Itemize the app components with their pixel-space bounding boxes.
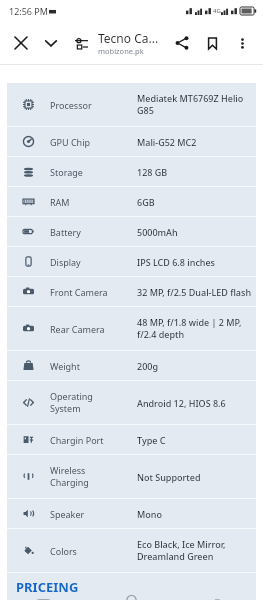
staticText: Mono [137,508,253,520]
staticText: IPS LCD 6.8 inches [137,256,253,268]
staticText: Operating System [50,390,137,415]
staticText: Mali-G52 MC2 [137,136,253,148]
staticText: Weight [50,360,137,372]
staticText: GPU Chip [50,136,137,148]
button[interactable]: Processor [7,83,256,126]
button[interactable]: Wireless Charging [7,455,256,498]
staticText: Android 12, HIOS 8.6 [137,397,253,409]
staticText: 6GB [137,196,253,208]
button[interactable]: Close [6,28,36,58]
staticText: Rear Camera [50,323,137,335]
button[interactable]: Battery [7,217,256,246]
button[interactable]: More options [227,28,257,58]
button[interactable]: Operating System [7,381,256,424]
staticText: Display [50,256,137,268]
staticText: Type C [137,434,253,446]
button[interactable]: Tecno Ca... [96,30,167,56]
staticText: 32 MP, f/2.5 Dual-LED flash [137,286,253,298]
staticText: 48 MP, f/1.8 wide | 2 MP, f/2.4 depth [137,316,253,341]
button[interactable]: Collapse [36,28,66,58]
staticText: PRICEING [16,578,79,596]
staticText: 5000mAh [137,226,253,238]
staticText: Battery [50,226,137,238]
staticText: 12:56 PM [9,5,48,17]
staticText: Eco Black, Ice Mirror, Dreamland Green [137,538,253,563]
button[interactable]: RAM [7,187,256,216]
staticText: Not Supported [137,471,253,483]
staticText: Storage [50,166,137,178]
staticText: Chargin Port [50,434,137,446]
button[interactable]: Bookmark [197,28,227,58]
button[interactable]: PRICEING [7,573,256,600]
staticText: RAM [50,196,137,208]
button[interactable]: Colors [7,529,256,572]
staticText: Wireless Charging [50,464,137,489]
button[interactable]: Storage [7,157,256,186]
button[interactable]: Chargin Port [7,425,256,454]
staticText: Colors [50,545,137,557]
staticText: 4G [213,7,221,15]
staticText: Processor [50,99,137,111]
staticText: Front Camera [50,286,137,298]
staticText: Mediatek MT6769Z Helio G85 [137,92,253,117]
staticText: 128 GB [137,166,253,178]
staticText: Tecno Ca... [98,30,159,46]
button[interactable]: GPU Chip [7,127,256,156]
staticText: Speaker [50,508,137,520]
staticText: 200g [137,360,253,372]
button[interactable]: Speaker [7,499,256,528]
button[interactable]: Weight [7,351,256,380]
button[interactable]: Page info [66,28,96,58]
button[interactable]: Share [167,28,197,58]
button[interactable]: Display [7,247,256,276]
staticText: mobizone.pk [98,46,144,56]
button[interactable]: Rear Camera [7,307,256,350]
button[interactable]: Front Camera [7,277,256,306]
